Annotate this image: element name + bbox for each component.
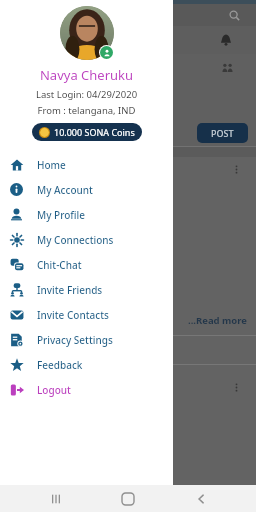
staticText: ments [2,344,29,356]
staticText: POST [211,127,234,139]
button[interactable]: Invite Contacts [0,302,173,327]
staticText: Home [37,158,66,172]
button[interactable]: Chit-Chat [0,252,173,277]
staticText: Last Login: 04/29/2020 [0,88,173,101]
staticText: e world's [2,261,42,274]
staticText: Invite Friends [37,283,103,297]
staticText: 10.000 SONA Coins [54,126,135,138]
button[interactable]: Share [57,344,82,356]
button[interactable]: Back [184,485,218,512]
staticText: Chit-Chat [37,258,82,272]
button[interactable]: Share [39,343,52,356]
button[interactable]: More options [230,163,242,175]
button[interactable]: Search [226,7,242,23]
staticText: ...Read more [188,314,248,327]
button[interactable]: Feedback [0,352,173,377]
staticText: Logout [37,383,71,397]
staticText: My Connections [37,233,114,247]
staticText: Share [57,344,82,356]
button[interactable]: Home [111,485,145,512]
staticText: ne else, period. [2,291,71,304]
button[interactable]: Invite Friends [0,277,173,302]
button[interactable]: My Connections [0,227,173,252]
button[interactable]: 10.000 SONA Coins [32,123,142,141]
staticText: hed privacy. [2,276,56,289]
button[interactable]: My Account [0,177,173,202]
staticText: From : telangana, IND [0,104,173,117]
button[interactable]: POST [197,123,248,143]
staticText: Invite Contacts [37,308,109,322]
staticText: My Profile [37,208,85,222]
staticText: Navya Cheruku [0,66,173,84]
button[interactable]: Logout [0,377,173,402]
staticText: Feedback [37,358,83,372]
button[interactable]: Recent apps [39,485,73,512]
button[interactable]: Home [0,152,173,177]
staticText: My Account [37,183,93,197]
button[interactable]: ...Read more [188,314,256,327]
staticText: Privacy Settings [37,333,113,347]
button[interactable]: My Profile [0,202,173,227]
button[interactable]: More options [230,381,242,393]
button[interactable]: Notifications [218,32,234,48]
button[interactable]: Groups [220,60,234,74]
button[interactable]: Privacy Settings [0,327,173,352]
